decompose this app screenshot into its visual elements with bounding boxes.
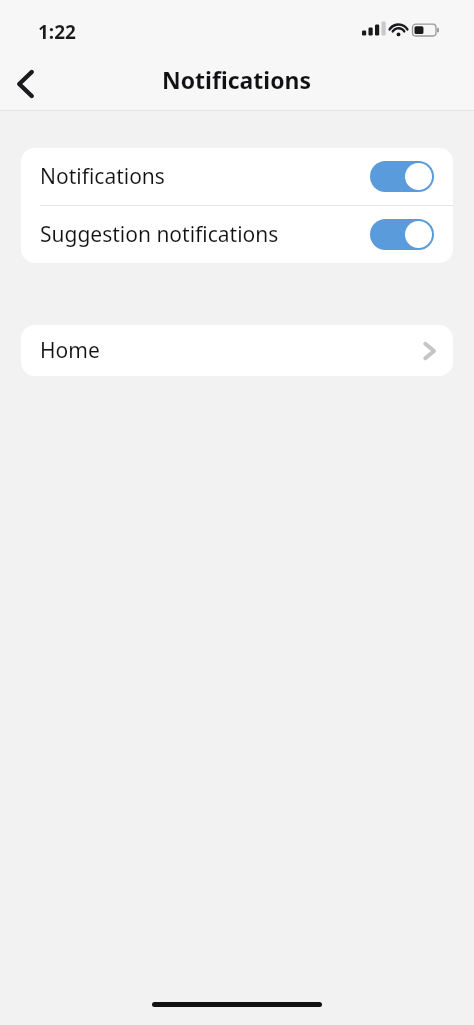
button[interactable]: Notifications xyxy=(21,148,453,205)
staticText: Home xyxy=(40,336,422,365)
button[interactable]: Suggestion notifications xyxy=(21,206,453,263)
staticText: Notifications xyxy=(40,162,370,191)
button[interactable]: Toggle xyxy=(370,219,434,250)
button[interactable]: Back xyxy=(0,58,52,110)
button[interactable]: Toggle xyxy=(370,161,434,192)
staticText: Suggestion notifications xyxy=(40,220,370,249)
button[interactable]: Home xyxy=(21,325,453,376)
staticText: 1:22 xyxy=(38,19,76,45)
staticText: Notifications xyxy=(162,64,312,95)
